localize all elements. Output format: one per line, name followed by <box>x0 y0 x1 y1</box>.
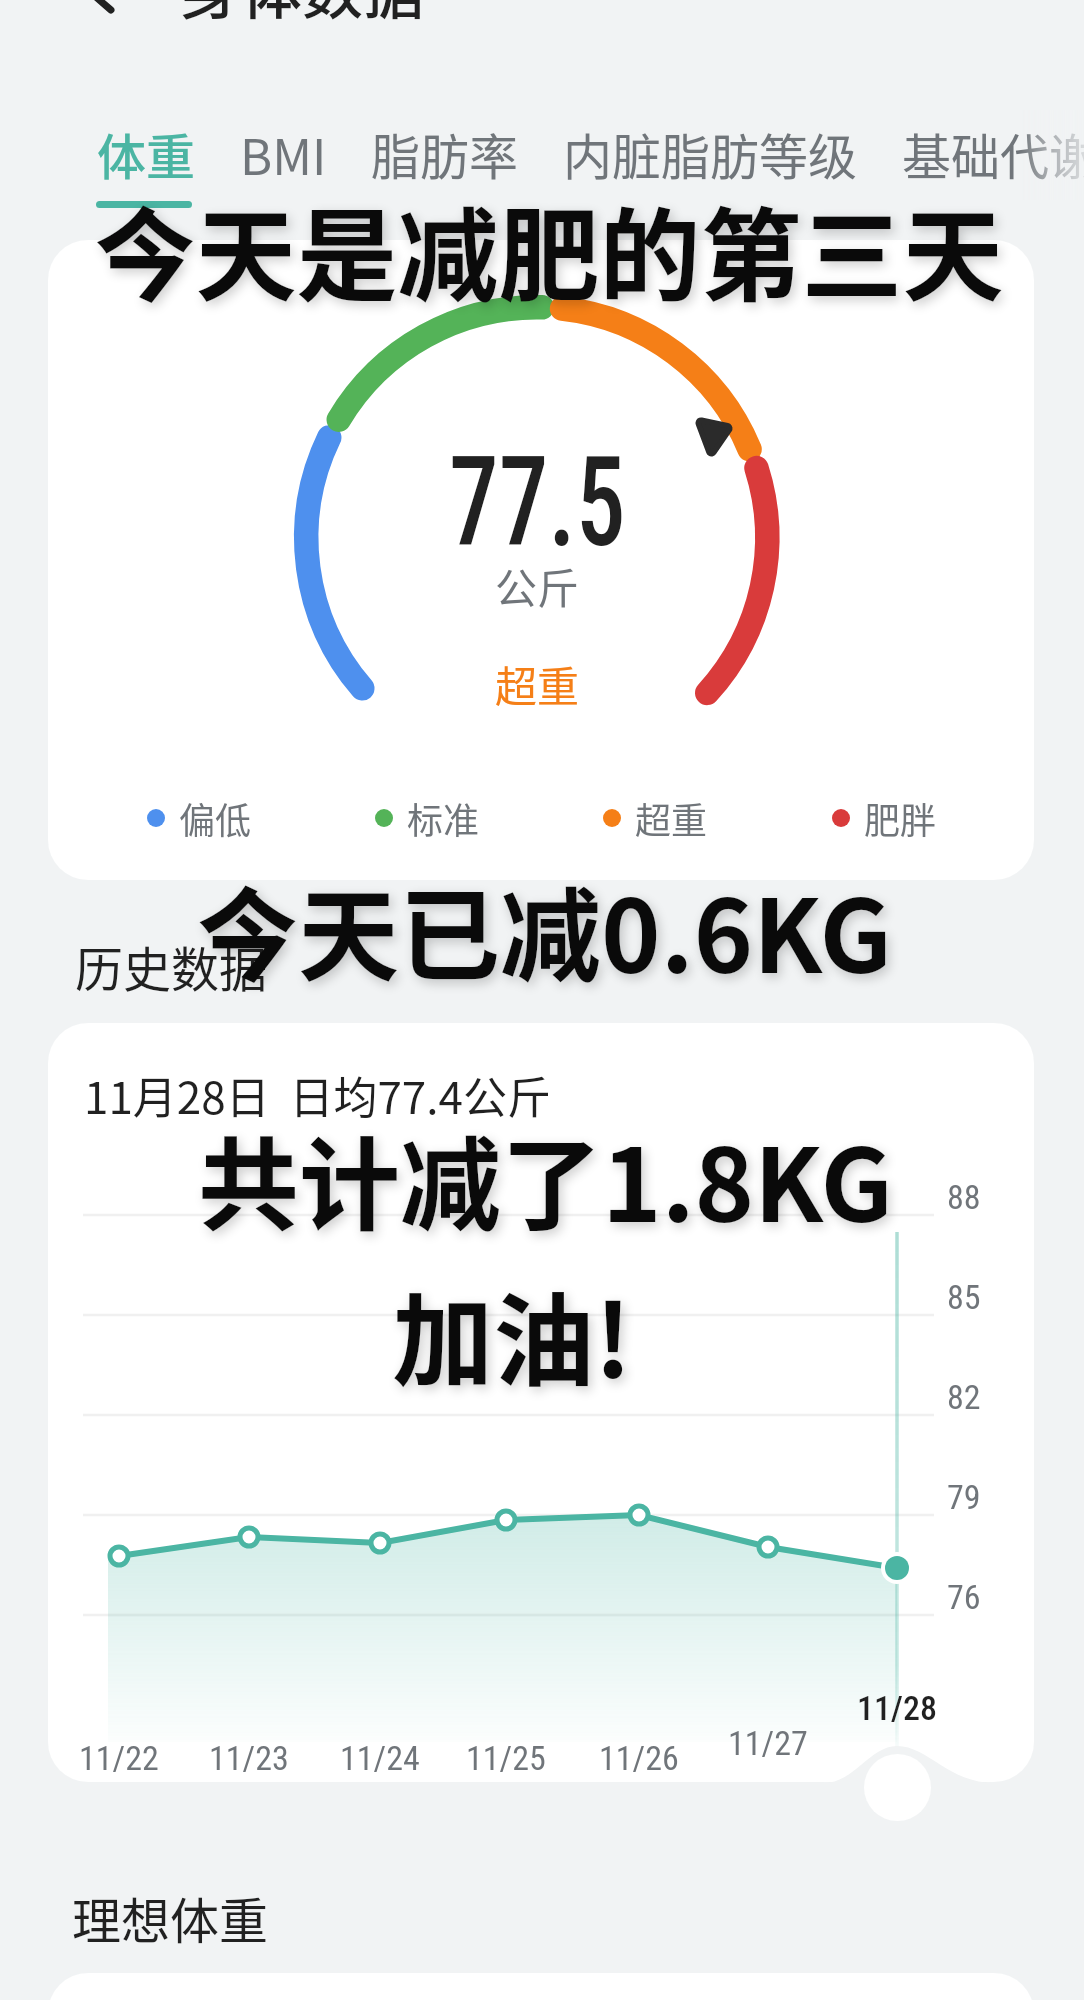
staticText: 79 <box>947 1477 981 1517</box>
staticText: 内脏脂肪等级 <box>563 118 858 189</box>
button[interactable]: 77.5 <box>48 240 1034 880</box>
staticText: 身体数据 <box>180 0 425 31</box>
button[interactable]: BMI <box>240 118 371 189</box>
button[interactable]: Chart handle <box>864 1754 931 1821</box>
staticText: 标准 <box>407 792 480 844</box>
staticText: 11/22 <box>79 1738 159 1778</box>
button[interactable]: 11月28日 日均77.4公斤 <box>48 1023 1034 1782</box>
staticText: 77.5 <box>449 430 626 575</box>
staticText: 脂肪率 <box>371 118 519 189</box>
staticText: 超重 <box>495 653 580 714</box>
staticText: 11/24 <box>340 1738 420 1778</box>
staticText: 基础代谢 <box>902 118 1084 189</box>
staticText: 今天已减0.6KG <box>197 856 892 1002</box>
staticText: 11/25 <box>466 1738 546 1778</box>
staticText: 共计减了1.8KG <box>198 1105 893 1251</box>
button[interactable]: 基础代谢 <box>902 118 1084 189</box>
button[interactable]: 标准 <box>375 792 480 844</box>
staticText: 超重 <box>635 792 708 844</box>
staticText: 88 <box>947 1177 981 1217</box>
staticText: BMI <box>240 118 327 189</box>
staticText: 82 <box>947 1377 981 1417</box>
staticText: 今天是减肥的第三天 <box>94 176 1004 322</box>
staticText: 加油! <box>392 1261 632 1407</box>
button[interactable]: 偏低 <box>147 792 252 844</box>
button[interactable]: 超重 <box>603 792 708 844</box>
staticText: 11/26 <box>599 1738 679 1778</box>
staticText: 11/23 <box>209 1738 289 1778</box>
staticText: 偏低 <box>179 792 252 844</box>
button[interactable]: 内脏脂肪等级 <box>563 118 902 189</box>
staticText: 历史数据 <box>75 931 268 1001</box>
button[interactable]: 脂肪率 <box>371 118 563 189</box>
button[interactable]: 肥胖 <box>832 792 937 844</box>
staticText: 公斤 <box>495 555 580 616</box>
staticText: 理想体重 <box>72 1882 269 1953</box>
staticText: 11月28日 日均77.4公斤 <box>84 1063 551 1127</box>
staticText: 体重 <box>97 118 196 189</box>
button[interactable]: 体重 <box>97 118 240 189</box>
button[interactable]: Back <box>74 0 130 10</box>
staticText: 76 <box>947 1577 981 1617</box>
staticText: 11/27 <box>728 1723 808 1763</box>
staticText: 肥胖 <box>864 792 937 844</box>
staticText: 11/28 <box>857 1688 937 1728</box>
staticText: 85 <box>947 1277 981 1317</box>
